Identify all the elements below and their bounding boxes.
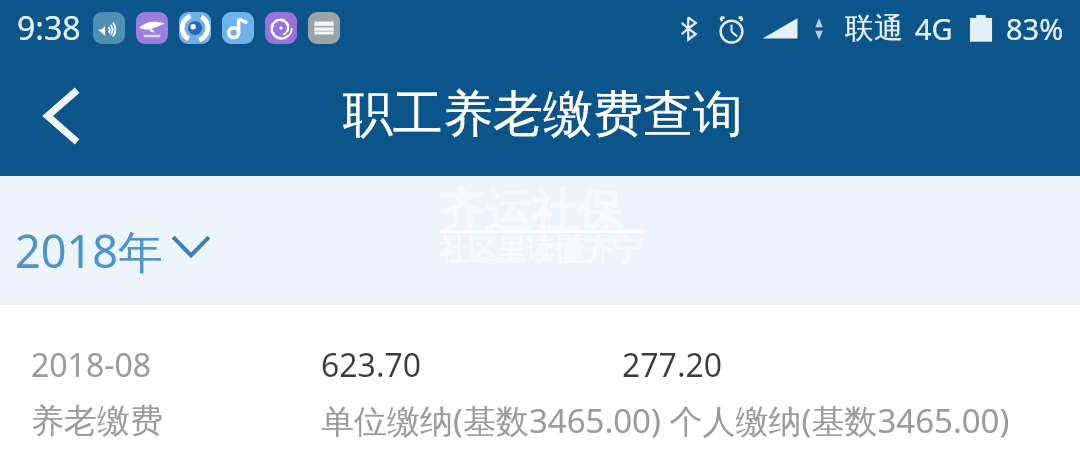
staticText: 4G [915, 9, 953, 48]
staticText: 单位缴纳(基数3465.00) 个人缴纳(基数3465.00) [321, 398, 1010, 443]
button[interactable]: 2018-08 [0, 312, 1080, 453]
staticText: 2018-08 [31, 343, 321, 387]
staticText: 83% [1006, 9, 1064, 48]
button[interactable]: 2018年 [0, 220, 228, 281]
staticText: 养老缴费 [31, 400, 321, 442]
staticText: 9:38 [17, 6, 81, 50]
staticText: 623.70 [321, 343, 622, 387]
staticText: 277.20 [622, 343, 723, 387]
staticText: 社区里读懂齐宁 [439, 232, 642, 269]
staticText: 2018年 [15, 220, 163, 281]
staticText: 职工养老缴费查询 [343, 83, 743, 146]
staticText: 联通 [845, 10, 903, 47]
button[interactable]: Back [22, 77, 100, 155]
staticText: 齐运社保 [439, 183, 623, 241]
